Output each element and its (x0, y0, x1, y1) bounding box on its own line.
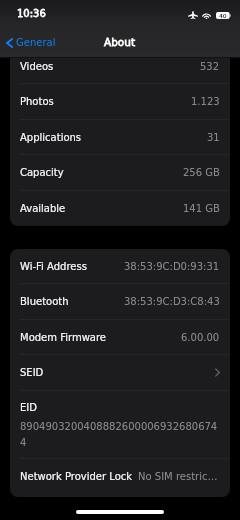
staticText: 8904903200408882600006932680674 (20, 421, 218, 433)
other: Wi-Fi (203, 12, 210, 19)
button[interactable]: Photos (10, 84, 230, 119)
button[interactable]: Videos (10, 49, 230, 84)
staticText: Applications (20, 132, 82, 144)
button[interactable]: Available (10, 191, 230, 226)
staticText: About (104, 36, 136, 48)
button[interactable]: Applications (10, 120, 230, 155)
staticText: Bluetooth (20, 296, 69, 308)
staticText: Available (20, 203, 66, 215)
other: SEID details (215, 368, 220, 377)
staticText: Network Provider Lock (20, 471, 133, 483)
staticText: Wi-Fi Address (20, 261, 87, 273)
staticText: Capacity (20, 167, 64, 179)
button[interactable]: Wi-Fi Address (10, 249, 230, 284)
staticText: General (16, 37, 56, 49)
staticText: 141 GB (183, 203, 220, 215)
staticText: 1.123 (191, 96, 220, 108)
staticText: 256 GB (183, 167, 220, 179)
button[interactable]: Bluetooth (10, 284, 230, 319)
staticText: EID (20, 402, 37, 414)
other: Airplane mode (188, 11, 198, 19)
button[interactable]: Network Provider Lock (10, 459, 230, 494)
staticText: 31 (207, 132, 220, 144)
button[interactable]: General (6, 34, 56, 52)
staticText: 38:53:9C:D3:C8:43 (124, 296, 220, 308)
button[interactable]: Modem Firmware (10, 320, 230, 355)
staticText: SEID (20, 367, 44, 379)
staticText: 532 (200, 61, 220, 73)
staticText: Videos (20, 61, 54, 73)
staticText: 10:36 (17, 8, 46, 20)
staticText: Photos (20, 96, 54, 108)
staticText: 40 (219, 12, 227, 19)
staticText: No SIM restricti... (138, 471, 220, 483)
button[interactable]: Capacity (10, 155, 230, 190)
staticText: 6.00.00 (181, 332, 220, 344)
button[interactable]: EID (10, 391, 230, 459)
staticText: 38:53:9C:D0:93:31 (124, 261, 220, 273)
button[interactable]: SEID (10, 355, 230, 390)
staticText: Modem Firmware (20, 332, 106, 344)
staticText: 4 (20, 437, 27, 449)
